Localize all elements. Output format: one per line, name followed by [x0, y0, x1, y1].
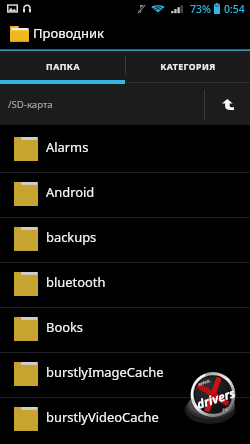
- staticText: burstlyImageCache: [46, 363, 164, 381]
- staticText: ПАПКА: [46, 61, 80, 73]
- button[interactable]: ПАПКА: [0, 51, 125, 84]
- button[interactable]: burstlyVideoCache: [0, 398, 250, 442]
- staticText: /SD-карта: [8, 98, 204, 111]
- button[interactable]: Android: [0, 173, 250, 217]
- staticText: .ru: [220, 405, 229, 414]
- staticText: Android: [46, 183, 95, 201]
- staticText: bluetooth: [46, 273, 106, 291]
- staticText: Проводник: [33, 24, 104, 42]
- staticText: Books: [46, 318, 84, 336]
- button[interactable]: КАТЕГОРИЯ: [125, 51, 250, 84]
- staticText: backups: [46, 228, 97, 246]
- button[interactable]: backups: [0, 218, 250, 262]
- staticText: 0:54: [224, 2, 245, 16]
- staticText: burstlyVideoCache: [46, 408, 159, 426]
- staticText: КАТЕГОРИЯ: [160, 61, 216, 73]
- staticText: drivers: [194, 384, 237, 412]
- button[interactable]: bluetooth: [0, 263, 250, 307]
- staticText: www.: [197, 377, 212, 388]
- staticText: Alarms: [46, 138, 89, 156]
- staticText: 73%: [190, 2, 211, 16]
- button[interactable]: Up one level: [205, 84, 250, 125]
- button[interactable]: Books: [0, 308, 250, 352]
- button[interactable]: burstlyImageCache: [0, 353, 250, 397]
- button[interactable]: Alarms: [0, 128, 250, 172]
